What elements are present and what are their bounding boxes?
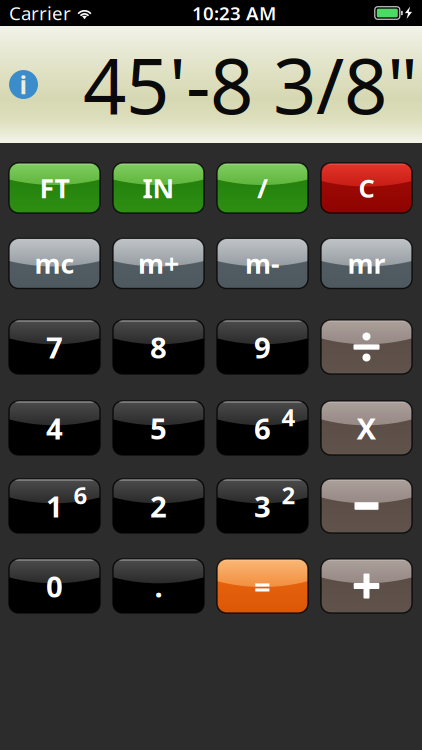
staticText: 0: [46, 566, 63, 605]
button[interactable]: 8: [113, 320, 204, 374]
button[interactable]: m+: [113, 238, 204, 288]
button[interactable]: 1: [9, 479, 100, 533]
button[interactable]: 3: [217, 479, 308, 533]
staticText: C: [358, 171, 374, 205]
button[interactable]: C: [321, 163, 412, 213]
button[interactable]: 6: [217, 401, 308, 455]
staticText: i: [19, 68, 27, 101]
button[interactable]: Info: [9, 70, 38, 99]
button[interactable]: 7: [9, 320, 100, 374]
staticText: m-: [245, 246, 280, 281]
button[interactable]: 4: [9, 401, 100, 455]
staticText: 45'-8 3/8": [83, 34, 418, 135]
staticText: 6: [73, 479, 87, 511]
button[interactable]: mc: [9, 238, 100, 288]
staticText: .: [154, 566, 162, 605]
button[interactable]: Divide: [321, 320, 412, 374]
staticText: 9: [254, 327, 271, 366]
button[interactable]: 0: [9, 559, 100, 613]
staticText: 6: [254, 408, 271, 447]
staticText: mc: [34, 246, 74, 281]
staticText: Carrier: [9, 1, 71, 25]
staticText: 7: [46, 327, 63, 366]
staticText: 10:23 AM: [192, 1, 276, 25]
button[interactable]: /: [217, 163, 308, 213]
staticText: 5: [150, 408, 167, 447]
button[interactable]: 2: [113, 479, 204, 533]
staticText: 3: [254, 486, 271, 525]
button[interactable]: 5: [113, 401, 204, 455]
button[interactable]: .: [113, 559, 204, 613]
button[interactable]: Minus: [321, 479, 412, 533]
staticText: 1: [46, 486, 63, 525]
staticText: 2: [150, 486, 167, 525]
staticText: FT: [39, 170, 69, 206]
staticText: X: [356, 408, 376, 447]
button[interactable]: FT: [9, 163, 100, 213]
button[interactable]: 9: [217, 320, 308, 374]
staticText: IN: [142, 170, 174, 206]
staticText: 8: [150, 327, 167, 366]
button[interactable]: Plus: [321, 559, 412, 613]
staticText: 4: [46, 408, 63, 447]
button[interactable]: mr: [321, 238, 412, 288]
button[interactable]: =: [217, 559, 308, 613]
button[interactable]: m-: [217, 238, 308, 288]
staticText: 4: [281, 401, 295, 433]
staticText: 2: [281, 479, 295, 511]
staticText: =: [254, 566, 271, 605]
staticText: /: [257, 170, 268, 206]
button[interactable]: IN: [113, 163, 204, 213]
staticText: mr: [347, 246, 385, 281]
button[interactable]: X: [321, 401, 412, 455]
staticText: m+: [138, 246, 179, 281]
